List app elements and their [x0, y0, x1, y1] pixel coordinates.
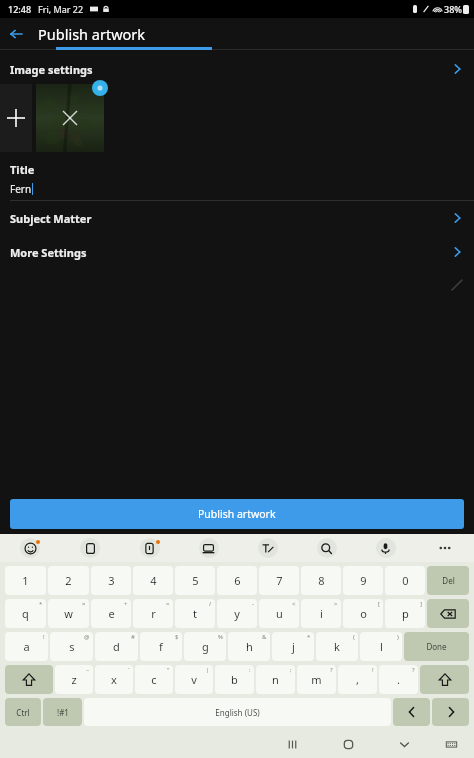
button[interactable]: right — [432, 698, 469, 726]
button[interactable]: j — [272, 632, 314, 661]
button[interactable]: d — [95, 632, 138, 661]
staticText: g — [202, 639, 209, 654]
button[interactable]: . — [379, 665, 418, 694]
button[interactable]: 3 — [91, 566, 131, 595]
button[interactable]: g — [184, 632, 226, 661]
button[interactable]: i — [301, 599, 341, 628]
button[interactable]: 6 — [217, 566, 257, 595]
button[interactable]: Search — [297, 534, 356, 562]
button[interactable]: shift — [5, 665, 53, 694]
button[interactable]: Switch keyboard — [432, 730, 470, 758]
staticText: / — [209, 600, 212, 608]
staticText: l — [380, 639, 383, 654]
staticText: × — [82, 600, 86, 608]
staticText: 8 — [318, 573, 325, 588]
staticText: e — [108, 606, 115, 621]
button[interactable]: 8 — [301, 566, 341, 595]
button[interactable]: Recents — [264, 730, 320, 758]
staticText: , — [356, 672, 359, 687]
button[interactable]: Add image — [0, 84, 32, 152]
staticText: # — [131, 633, 135, 641]
staticText: q — [22, 606, 29, 621]
button[interactable]: 7 — [259, 566, 299, 595]
button[interactable]: 4 — [133, 566, 173, 595]
button[interactable]: backspace — [427, 599, 469, 628]
staticText: ? — [330, 666, 333, 674]
staticText: Publish artwork — [38, 24, 146, 44]
button[interactable]: , — [338, 665, 377, 694]
staticText: n — [272, 672, 279, 687]
button[interactable]: e — [91, 599, 131, 628]
button[interactable]: 0 — [385, 566, 425, 595]
button[interactable]: Publish artwork — [10, 499, 464, 529]
button[interactable]: o — [343, 599, 383, 628]
staticText: Subject Matter — [10, 211, 92, 226]
staticText: h — [246, 639, 253, 654]
button[interactable]: !#1 — [43, 698, 82, 726]
button[interactable]: More Settings — [0, 235, 474, 269]
button[interactable]: p — [385, 599, 425, 628]
button[interactable]: r — [133, 599, 173, 628]
button[interactable]: 5 — [175, 566, 215, 595]
staticText: @ — [84, 633, 90, 641]
staticText: * — [307, 633, 311, 641]
button[interactable]: Stickers — [120, 534, 179, 562]
staticText: s — [69, 639, 75, 654]
button[interactable]: 2 — [48, 566, 89, 595]
button[interactable]: Ctrl — [5, 698, 41, 726]
button[interactable]: More options — [415, 534, 474, 562]
button[interactable]: u — [259, 599, 299, 628]
button[interactable]: q — [5, 599, 46, 628]
button[interactable]: m — [297, 665, 336, 694]
button[interactable]: Del — [427, 566, 469, 595]
button[interactable]: Selected image — [36, 84, 104, 152]
button[interactable]: Translate — [179, 534, 238, 562]
button[interactable]: a — [5, 632, 48, 661]
button[interactable]: t — [175, 599, 215, 628]
staticText: 4 — [150, 573, 157, 588]
button[interactable]: s — [50, 632, 93, 661]
staticText: a — [23, 639, 30, 654]
button[interactable]: b — [215, 665, 254, 694]
staticText: . — [397, 672, 400, 687]
button[interactable]: shift — [420, 665, 469, 694]
button[interactable]: l — [360, 632, 402, 661]
button[interactable]: y — [217, 599, 257, 628]
staticText: u — [276, 606, 283, 621]
staticText: Publish artwork — [198, 507, 276, 521]
button[interactable]: Clipboard — [60, 534, 120, 562]
button[interactable]: Back — [0, 18, 32, 50]
staticText: $ — [175, 633, 179, 641]
button[interactable]: h — [228, 632, 270, 661]
staticText: 1 — [22, 573, 29, 588]
button[interactable]: Emoji — [0, 534, 60, 562]
button[interactable]: Image settings — [0, 56, 474, 82]
staticText: > — [334, 600, 338, 608]
button[interactable]: c — [135, 665, 173, 694]
staticText: p — [402, 606, 409, 621]
staticText: f — [159, 639, 163, 654]
button[interactable]: w — [48, 599, 89, 628]
staticText: o — [360, 606, 367, 621]
button[interactable]: 9 — [343, 566, 383, 595]
button[interactable]: n — [256, 665, 295, 694]
button[interactable]: English (US) — [84, 698, 391, 726]
button[interactable]: left — [393, 698, 430, 726]
button[interactable]: 1 — [5, 566, 46, 595]
button[interactable]: Subject Matter — [0, 201, 474, 235]
button[interactable]: Home — [320, 730, 376, 758]
button[interactable]: f — [140, 632, 182, 661]
button[interactable]: Done — [404, 632, 469, 661]
button[interactable]: Text edit — [238, 534, 297, 562]
button[interactable]: k — [316, 632, 358, 661]
staticText: w — [64, 606, 73, 621]
button[interactable]: v — [175, 665, 213, 694]
staticText: ) — [397, 633, 399, 641]
button[interactable]: Hide keyboard — [376, 730, 432, 758]
staticText: ] — [420, 600, 422, 608]
button[interactable]: Voice input — [356, 534, 415, 562]
button[interactable]: z — [55, 665, 93, 694]
button[interactable]: x — [95, 665, 133, 694]
staticText: - — [252, 600, 254, 608]
button[interactable]: Image options — [92, 80, 108, 96]
